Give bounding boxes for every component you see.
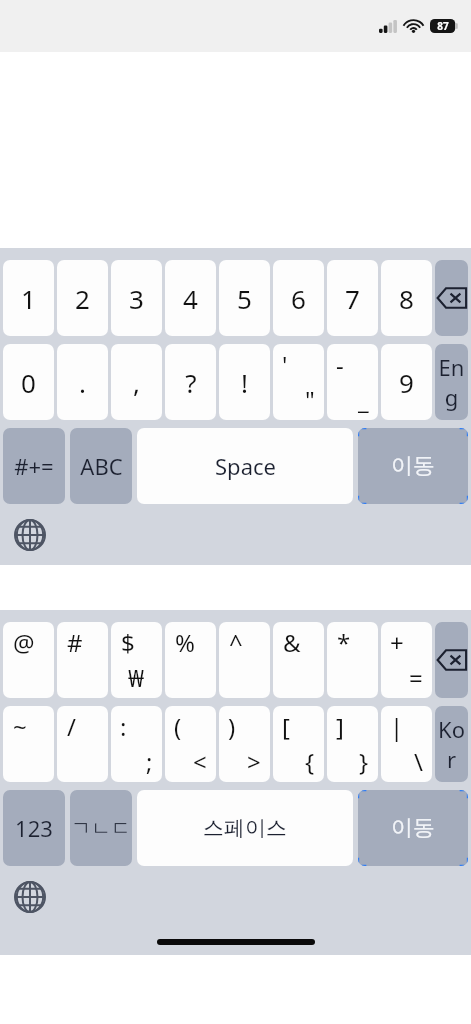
staticText: [ bbox=[282, 710, 290, 743]
button[interactable]: : ; bbox=[111, 706, 162, 782]
staticText: " bbox=[305, 383, 315, 416]
staticText: ( bbox=[174, 710, 182, 743]
button[interactable]: ) > bbox=[219, 706, 270, 782]
button[interactable]: 1 bbox=[3, 260, 54, 336]
button[interactable]: ABC bbox=[70, 428, 132, 504]
button[interactable]: | \ bbox=[381, 706, 432, 782]
button[interactable]: Kor bbox=[435, 706, 468, 782]
staticText: $ bbox=[121, 626, 135, 659]
staticText: # bbox=[67, 626, 83, 659]
staticText: ) bbox=[228, 710, 236, 743]
button[interactable]: $ ₩ bbox=[111, 622, 162, 698]
staticText: 8 bbox=[399, 281, 414, 316]
button[interactable]: * bbox=[327, 622, 378, 698]
staticText: #+= bbox=[14, 451, 54, 481]
staticText: | bbox=[390, 710, 404, 743]
button[interactable]: ^ bbox=[219, 622, 270, 698]
button[interactable]: / bbox=[57, 706, 108, 782]
staticText: ; bbox=[146, 745, 153, 778]
staticText: 0 bbox=[21, 365, 36, 400]
staticText: & bbox=[283, 626, 301, 659]
button[interactable]: #+= bbox=[3, 428, 65, 504]
button[interactable]: 이동 bbox=[358, 790, 468, 866]
button[interactable]: Backspace bbox=[435, 622, 468, 698]
button[interactable]: Change language bbox=[4, 871, 56, 923]
staticText: ~ bbox=[13, 710, 27, 743]
button[interactable]: . bbox=[57, 344, 108, 420]
staticText: \ bbox=[414, 745, 423, 778]
button[interactable]: 2 bbox=[57, 260, 108, 336]
staticText: { bbox=[305, 745, 315, 778]
button[interactable]: Space bbox=[137, 428, 353, 504]
staticText: 이동 bbox=[391, 814, 435, 842]
button[interactable]: 4 bbox=[165, 260, 216, 336]
staticText: 6 bbox=[291, 281, 306, 316]
staticText: < bbox=[193, 745, 207, 778]
staticText: 이동 bbox=[391, 452, 435, 480]
staticText: Space bbox=[215, 451, 276, 481]
staticText: ABC bbox=[80, 451, 123, 481]
button[interactable]: ( < bbox=[165, 706, 216, 782]
button[interactable]: ! bbox=[219, 344, 270, 420]
staticText: ] bbox=[336, 710, 344, 743]
button[interactable]: # bbox=[57, 622, 108, 698]
staticText: } bbox=[359, 745, 369, 778]
button[interactable]: @ bbox=[3, 622, 54, 698]
staticText: 2 bbox=[75, 281, 90, 316]
staticText: % bbox=[175, 626, 195, 659]
button[interactable]: ㄱㄴㄷ bbox=[70, 790, 132, 866]
staticText: _ bbox=[358, 383, 369, 416]
button[interactable]: 5 bbox=[219, 260, 270, 336]
staticText: 9 bbox=[399, 365, 414, 400]
staticText: ₩ bbox=[128, 661, 145, 694]
button[interactable]: - _ bbox=[327, 344, 378, 420]
button[interactable]: ] } bbox=[327, 706, 378, 782]
staticText: ' bbox=[282, 348, 288, 381]
staticText: ! bbox=[241, 365, 248, 400]
staticText: 5 bbox=[237, 281, 252, 316]
staticText: 7 bbox=[345, 281, 360, 316]
staticText: ^ bbox=[229, 626, 243, 659]
staticText: + bbox=[390, 626, 404, 659]
button[interactable]: ' " bbox=[273, 344, 324, 420]
button[interactable]: % bbox=[165, 622, 216, 698]
button[interactable]: Eng bbox=[435, 344, 468, 420]
staticText: 3 bbox=[129, 281, 144, 316]
button[interactable]: & bbox=[273, 622, 324, 698]
staticText: ㄱㄴㄷ bbox=[71, 816, 131, 841]
staticText: Eng bbox=[435, 352, 468, 412]
staticText: @ bbox=[13, 626, 35, 659]
staticText: ? bbox=[185, 365, 197, 400]
button[interactable]: ? bbox=[165, 344, 216, 420]
staticText: 87 bbox=[437, 19, 449, 33]
staticText: * bbox=[337, 626, 351, 659]
staticText: Kor bbox=[435, 714, 468, 774]
staticText: 4 bbox=[183, 281, 198, 316]
staticText: 1 bbox=[21, 281, 36, 316]
button[interactable]: ~ bbox=[3, 706, 54, 782]
staticText: 123 bbox=[15, 813, 53, 843]
staticText: 스페이스 bbox=[203, 815, 287, 841]
button[interactable]: 9 bbox=[381, 344, 432, 420]
staticText: > bbox=[247, 745, 261, 778]
button[interactable]: 7 bbox=[327, 260, 378, 336]
button[interactable]: 0 bbox=[3, 344, 54, 420]
button[interactable]: Change language bbox=[4, 509, 56, 561]
staticText: = bbox=[409, 661, 423, 694]
staticText: . bbox=[79, 365, 86, 400]
staticText: - bbox=[336, 348, 344, 381]
button[interactable]: 123 bbox=[3, 790, 65, 866]
staticText: / bbox=[67, 710, 76, 743]
button[interactable]: 3 bbox=[111, 260, 162, 336]
button[interactable]: 6 bbox=[273, 260, 324, 336]
button[interactable]: 이동 bbox=[358, 428, 468, 504]
button[interactable]: Backspace bbox=[435, 260, 468, 336]
staticText: : bbox=[120, 710, 127, 743]
button[interactable]: 8 bbox=[381, 260, 432, 336]
staticText: , bbox=[133, 365, 140, 400]
button[interactable]: , bbox=[111, 344, 162, 420]
button[interactable]: + = bbox=[381, 622, 432, 698]
button[interactable]: 스페이스 bbox=[137, 790, 353, 866]
button[interactable]: [ { bbox=[273, 706, 324, 782]
